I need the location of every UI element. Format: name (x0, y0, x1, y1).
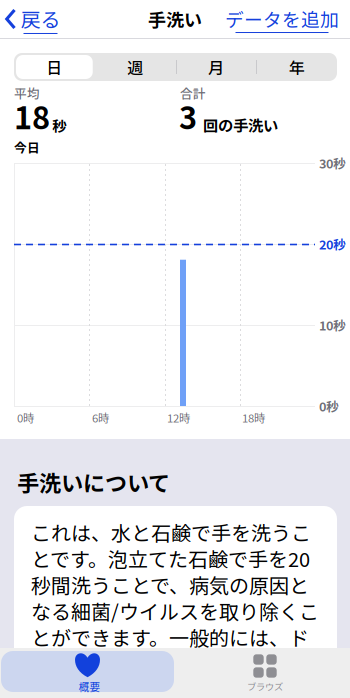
staticText: ブラウズ (247, 680, 283, 693)
button[interactable]: 日 (14, 53, 95, 81)
staticText: 0秒 (319, 397, 339, 415)
button[interactable]: 概要 (1, 651, 174, 692)
staticText: 回の手洗い (203, 114, 278, 136)
staticText: 概要 (78, 679, 100, 694)
staticText: 月 (208, 55, 224, 79)
staticText: 日 (46, 55, 62, 79)
button[interactable]: 戻る (0, 0, 60, 38)
button[interactable]: データを追加 (225, 0, 350, 38)
staticText: データを追加 (225, 5, 339, 32)
staticText: 18 (14, 94, 50, 138)
button[interactable]: ブラウズ (176, 651, 349, 692)
staticText: これは、水と石鹸で手を洗うことです。泡立てた石鹸で手を20秒間洗うことで、病気の… (31, 519, 319, 650)
staticText: 30秒 (319, 154, 346, 172)
staticText: 手洗いについて (17, 466, 170, 498)
button[interactable]: 年 (256, 53, 337, 81)
staticText: 0時 (17, 409, 34, 426)
staticText: 12時 (167, 409, 190, 426)
staticText: 年 (289, 55, 305, 79)
staticText: 18時 (242, 409, 265, 426)
staticText: 合計 (180, 84, 206, 102)
staticText: 6時 (92, 409, 109, 426)
staticText: 10秒 (319, 316, 346, 334)
staticText: 平均 (14, 84, 40, 102)
staticText: 20秒 (319, 235, 346, 253)
staticText: 秒 (52, 115, 67, 136)
staticText: 今日 (14, 138, 40, 156)
staticText: 戻る (20, 4, 60, 33)
button[interactable]: 月 (175, 53, 256, 81)
button[interactable]: 週 (95, 53, 176, 81)
staticText: 手洗い (148, 6, 202, 32)
staticText: 3 (179, 94, 197, 138)
staticText: 週 (127, 55, 143, 79)
